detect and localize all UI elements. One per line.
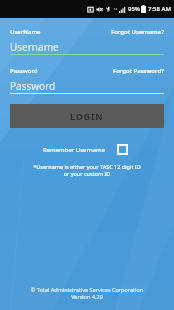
- staticText: LOGIN: [70, 110, 104, 122]
- button[interactable]: Remember Username: [0, 144, 128, 155]
- button[interactable]: Password: [10, 78, 164, 94]
- staticText: Forgot Username?: [111, 28, 164, 36]
- other: Remember Username checkbox: [117, 144, 128, 155]
- staticText: 7:58 AM: [148, 5, 171, 13]
- staticText: 95%: [128, 5, 140, 13]
- staticText: UserName: [10, 28, 41, 36]
- staticText: Password: [10, 67, 38, 75]
- staticText: Username: [10, 40, 59, 54]
- staticText: *Username is either your TASC 12 digit I…: [0, 163, 174, 177]
- staticText: Password: [10, 79, 56, 93]
- button[interactable]: Forgot Username?: [111, 28, 164, 36]
- staticText: Forgot Password?: [113, 67, 164, 75]
- staticText: © Total Administrative Services Corporat…: [0, 286, 174, 300]
- staticText: Remember Username: [43, 146, 106, 154]
- button[interactable]: Username: [10, 39, 164, 55]
- button[interactable]: LOGIN: [10, 104, 164, 128]
- button[interactable]: Forgot Password?: [113, 67, 164, 75]
